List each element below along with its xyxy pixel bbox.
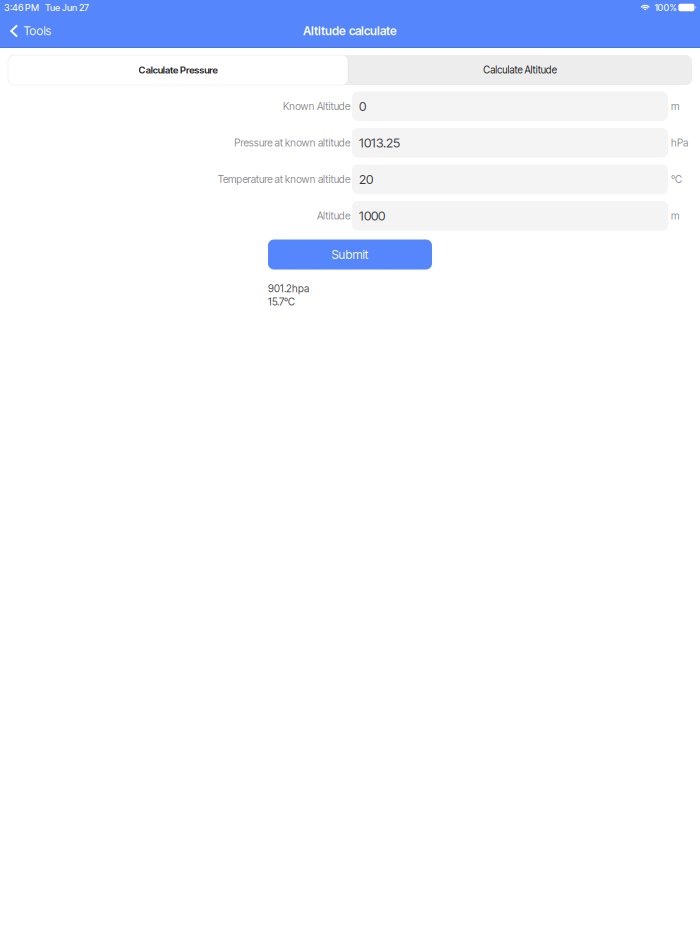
staticText: 901.2hpa <box>268 282 309 295</box>
staticText: hPa <box>671 136 688 149</box>
button[interactable]: Submit <box>268 239 432 269</box>
staticText: m <box>671 209 679 222</box>
staticText: 1013.25 <box>359 135 400 150</box>
button[interactable]: Calculate Pressure <box>8 55 348 85</box>
button[interactable]: Tools <box>0 15 59 47</box>
staticText: 15.7°C <box>268 296 295 308</box>
staticText: Temperature at known altitude <box>218 173 350 185</box>
staticText: Tools <box>23 24 51 38</box>
staticText: Submit <box>331 247 368 262</box>
staticText: Known Altitude <box>283 100 350 112</box>
staticText: Altitude calculate <box>303 24 397 38</box>
staticText: Altitude <box>317 209 350 222</box>
staticText: 0 <box>359 98 366 114</box>
staticText: 20 <box>359 171 373 187</box>
staticText: 3:46 PM <box>4 2 39 13</box>
staticText: Calculate Pressure <box>139 64 217 76</box>
staticText: °C <box>671 173 682 185</box>
button[interactable]: Calculate Altitude <box>348 55 692 85</box>
staticText: Calculate Altitude <box>483 64 557 76</box>
staticText: Tue Jun 27 <box>45 2 89 13</box>
staticText: Pressure at known altitude <box>234 136 350 149</box>
staticText: 1000 <box>359 208 385 223</box>
staticText: m <box>671 100 679 112</box>
staticText: 100% <box>654 2 676 13</box>
